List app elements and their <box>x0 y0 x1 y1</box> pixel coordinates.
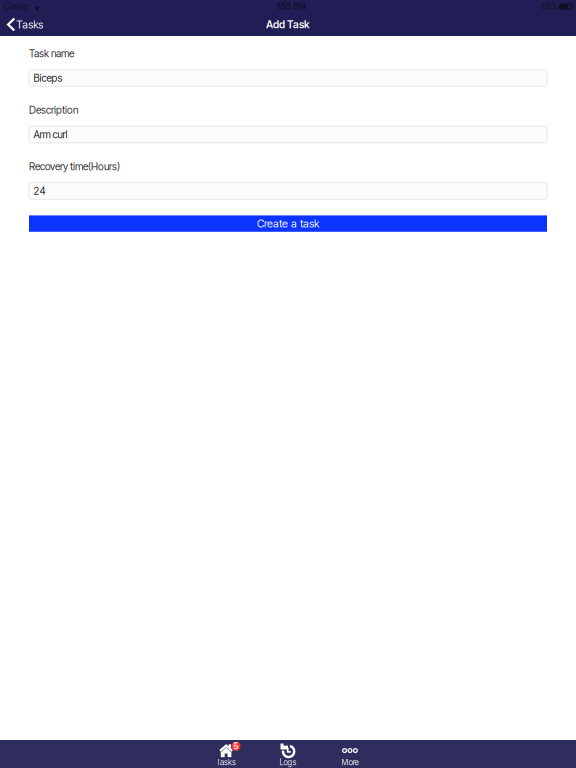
staticText: Carrier <box>4 1 29 11</box>
staticText: Biceps <box>34 72 63 84</box>
staticText: Tasks <box>216 757 236 767</box>
button[interactable]: 5 <box>195 740 257 768</box>
staticText: Add Task <box>266 18 310 31</box>
staticText: Description <box>29 104 78 116</box>
staticText: Logs <box>279 757 296 767</box>
button[interactable]: Biceps <box>29 70 547 86</box>
staticText: Arm curl <box>34 128 68 141</box>
staticText: Recovery time(Hours) <box>29 160 120 173</box>
button[interactable]: More <box>319 740 381 768</box>
staticText: 5 <box>233 741 238 751</box>
staticText: 24 <box>34 185 46 197</box>
button[interactable]: Logs <box>257 740 319 768</box>
staticText: Tasks <box>16 18 43 31</box>
button[interactable]: Arm curl <box>29 126 547 143</box>
staticText: 1:55 PM <box>276 1 305 11</box>
staticText: More <box>341 757 358 767</box>
staticText: 66% <box>541 1 557 11</box>
button[interactable]: Tasks <box>0 13 51 36</box>
button[interactable]: Create a task <box>29 215 547 232</box>
staticText: Create a task <box>257 217 319 230</box>
staticText: Task name <box>29 47 74 60</box>
button[interactable]: 24 <box>29 183 547 199</box>
